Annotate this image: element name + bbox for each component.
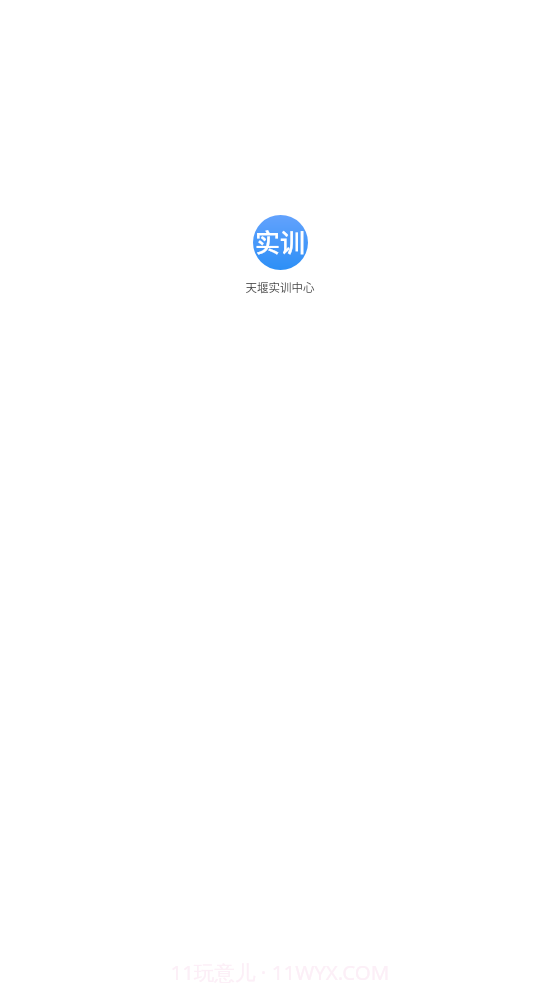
staticText: 实训 <box>255 223 306 259</box>
staticText: 天堰实训中心 <box>0 279 560 296</box>
button[interactable]: 天堰实训中心 应用图标 <box>253 215 308 270</box>
staticText: 11玩意儿 · 11WYX.COM <box>0 958 560 986</box>
